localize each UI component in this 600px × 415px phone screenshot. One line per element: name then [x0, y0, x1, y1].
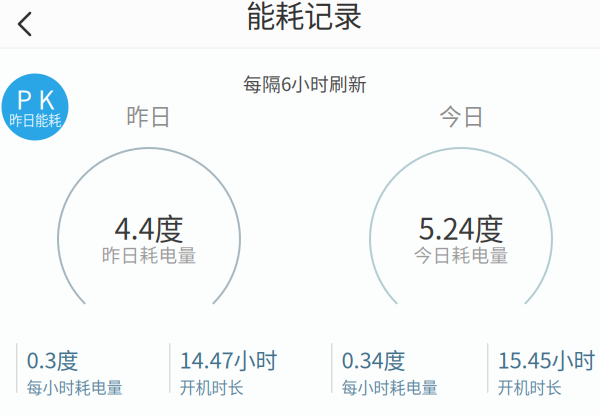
staticText: 昨日能耗: [9, 110, 61, 129]
staticText: 5.24度: [418, 206, 503, 248]
staticText: 4.4度: [114, 206, 183, 248]
staticText: 今日: [439, 99, 485, 131]
staticText: 每小时耗电量: [341, 375, 437, 398]
staticText: 昨日耗电量: [101, 240, 196, 267]
button[interactable]: 0.3度: [16, 343, 169, 395]
staticText: 能耗记录: [246, 0, 362, 35]
staticText: 0.3度: [26, 343, 78, 375]
staticText: 每小时耗电量: [26, 375, 122, 398]
staticText: 14.47小时: [179, 343, 277, 375]
staticText: 开机时长: [179, 375, 243, 398]
button[interactable]: PK 昨日能耗: [1, 73, 68, 140]
staticText: 15.45小时: [497, 343, 595, 375]
staticText: 每隔6小时刷新: [243, 69, 367, 96]
staticText: 0.34度: [341, 343, 405, 375]
staticText: 开机时长: [497, 375, 561, 398]
staticText: P K: [16, 80, 54, 117]
button[interactable]: 15.45小时: [487, 343, 600, 395]
button[interactable]: 14.47小时: [169, 343, 331, 395]
button[interactable]: 0.34度: [331, 343, 487, 395]
staticText: 昨日: [126, 99, 172, 131]
staticText: 今日耗电量: [413, 240, 508, 267]
button[interactable]: 返回: [1, 0, 49, 53]
